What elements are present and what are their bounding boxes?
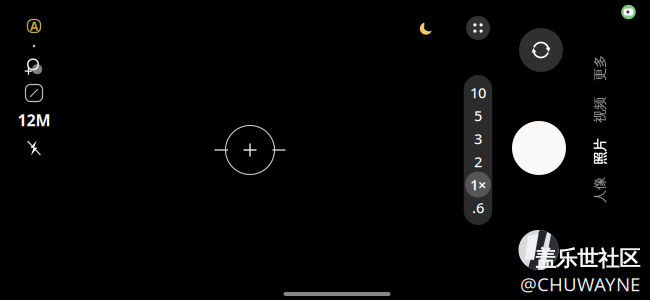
button[interactable]: 12M — [17, 107, 51, 133]
button[interactable]: Aspect ratio — [21, 79, 47, 107]
button[interactable]: Switch camera — [518, 27, 564, 73]
staticText: 盖乐世社区 — [535, 245, 640, 272]
button[interactable]: 3 — [464, 127, 492, 150]
button[interactable]: Flash off — [21, 133, 47, 163]
staticText: 1× — [470, 175, 486, 194]
staticText: 人像 — [587, 182, 613, 198]
staticText: 视频 — [587, 102, 613, 118]
button[interactable]: Take photo — [512, 121, 566, 175]
staticText: .6 — [472, 198, 484, 217]
staticText: 12M — [17, 109, 50, 131]
button[interactable]: 5 — [464, 104, 492, 127]
button[interactable]: 更多 — [587, 60, 613, 76]
staticText: @CHUWAYNE — [520, 272, 640, 296]
button[interactable]: 人像 — [587, 182, 613, 198]
button[interactable]: .6 — [464, 196, 492, 219]
staticText: 3 — [474, 129, 482, 148]
button[interactable]: More camera settings — [464, 14, 492, 42]
staticText: 5 — [474, 106, 482, 125]
button[interactable]: 照片 — [587, 144, 613, 160]
button[interactable]: 1× — [464, 173, 492, 196]
staticText: 更多 — [587, 60, 613, 76]
staticText: 10 — [470, 83, 486, 102]
button[interactable]: Motion photo — [21, 53, 47, 79]
button[interactable]: 视频 — [587, 102, 613, 118]
staticText: 照片 — [587, 144, 613, 160]
staticText: 2 — [474, 152, 482, 171]
button[interactable]: 2 — [464, 150, 492, 173]
button[interactable]: Scene optimiser — [21, 13, 47, 39]
button[interactable]: 10 — [464, 81, 492, 104]
staticText: A — [30, 18, 38, 34]
